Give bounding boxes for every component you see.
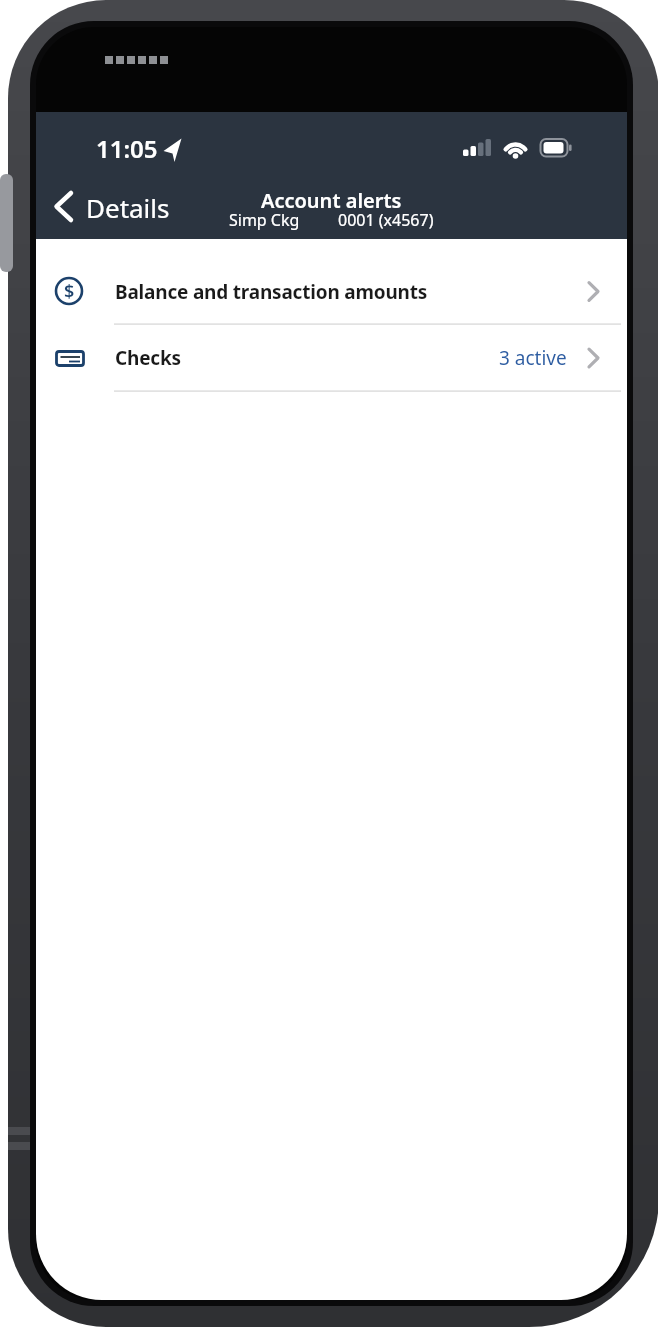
staticText: Checks: [115, 345, 181, 371]
button[interactable]: [36, 324, 627, 391]
button[interactable]: [36, 240, 627, 324]
staticText: Details: [86, 190, 170, 225]
staticText: Account alerts: [261, 187, 402, 214]
staticText: Balance and transaction amounts: [115, 279, 428, 305]
staticText: $: [64, 279, 75, 304]
staticText: Simp Ckg: [229, 209, 300, 231]
staticText: 0001 (x4567): [338, 209, 434, 231]
staticText: 3 active: [499, 345, 567, 371]
button[interactable]: [46, 183, 176, 231]
staticText: 11:05: [96, 132, 158, 165]
